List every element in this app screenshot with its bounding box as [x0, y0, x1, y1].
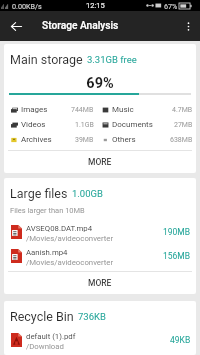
button[interactable]: More options: [176, 11, 200, 41]
button[interactable]: MORE: [4, 151, 196, 173]
staticText: 12:15: [86, 1, 105, 10]
staticText: 3.31GB free: [87, 54, 137, 65]
staticText: 39MB: [75, 136, 94, 144]
staticText: Recycle Bin: [10, 309, 74, 324]
staticText: 69%: [4, 75, 196, 92]
staticText: Main storage: [10, 52, 83, 67]
button[interactable]: Videos: [4, 117, 95, 132]
staticText: default (1).pdf: [26, 332, 76, 341]
button[interactable]: Archives: [4, 132, 95, 147]
staticText: /Download: [26, 342, 64, 351]
staticText: 27MB: [174, 121, 193, 129]
staticText: Aanish.mp4: [26, 248, 68, 257]
button[interactable]: Others: [95, 132, 196, 147]
button[interactable]: AVSEQ08.DAT.mp4: [4, 220, 196, 244]
staticText: Archives: [21, 135, 52, 144]
staticText: 736KB: [78, 311, 106, 322]
staticText: 0.00KB/s: [12, 2, 42, 10]
staticText: 67%: [164, 2, 178, 10]
staticText: Others: [112, 135, 136, 144]
staticText: 1.1GB: [75, 121, 94, 129]
button[interactable]: Documents: [95, 117, 196, 132]
staticText: Files larger than 10MB: [10, 206, 85, 215]
staticText: Documents: [112, 120, 153, 129]
staticText: /Movies/avideoconverter: [26, 258, 114, 267]
staticText: Videos: [21, 120, 46, 129]
staticText: 49KB: [170, 335, 191, 345]
staticText: 156MB: [163, 251, 191, 261]
staticText: 4.7MB: [172, 106, 193, 114]
button[interactable]: default (1).pdf: [4, 328, 196, 352]
staticText: Large files: [10, 186, 68, 201]
staticText: /Movies/avideoconverter: [26, 234, 114, 243]
staticText: Music: [112, 105, 134, 114]
staticText: Images: [21, 105, 48, 114]
button[interactable]: Aanish.mp4: [4, 244, 196, 268]
staticText: MORE: [88, 278, 112, 288]
button[interactable]: MORE: [4, 272, 196, 294]
button[interactable]: Music: [95, 102, 196, 117]
staticText: 190MB: [163, 227, 191, 237]
button[interactable]: Back: [0, 11, 32, 41]
staticText: 638MB: [170, 136, 193, 144]
button[interactable]: Images: [4, 102, 95, 117]
staticText: AVSEQ08.DAT.mp4: [26, 224, 93, 233]
staticText: 1.00GB: [72, 188, 103, 199]
staticText: 744MB: [71, 106, 94, 114]
staticText: MORE: [88, 157, 112, 167]
staticText: Storage Analysis: [42, 20, 119, 32]
